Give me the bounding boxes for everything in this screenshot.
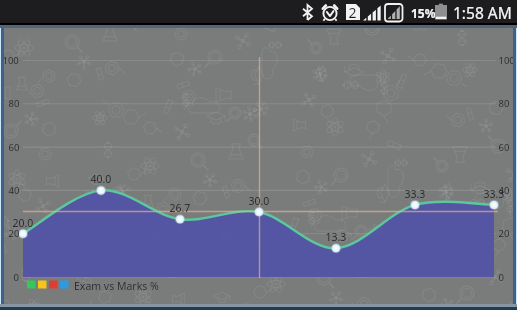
button[interactable]: Exam vs Marks chart (0, 0, 517, 310)
